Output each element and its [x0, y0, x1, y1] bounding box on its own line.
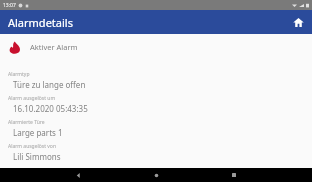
button[interactable]: Alarm ausgelöst von — [0, 141, 312, 165]
staticText: Large parts 1 — [13, 127, 63, 138]
staticText: Aktiver Alarm — [30, 42, 78, 52]
staticText: Alarm ausgelöst um — [8, 95, 56, 102]
button[interactable]: Aktiver Alarm — [0, 34, 312, 60]
staticText: Alarmtyp — [8, 71, 30, 78]
staticText: Türe zu lange offen — [13, 79, 86, 90]
button[interactable]: Home — [288, 12, 308, 32]
button[interactable]: Recent apps — [195, 168, 273, 182]
button[interactable]: Alarm ausgelöst um — [0, 93, 312, 117]
staticText: Alarmierte Türe — [8, 119, 45, 126]
staticText: Alarmdetails — [8, 15, 73, 30]
button[interactable]: Back — [39, 168, 117, 182]
button[interactable]: Alarmtyp — [0, 69, 312, 93]
button[interactable]: Home — [117, 168, 195, 182]
staticText: Lili Simmons — [13, 151, 61, 162]
staticText: 16.10.2020 05:43:35 — [13, 103, 88, 114]
button[interactable]: Alarmierte Türe — [0, 117, 312, 141]
staticText: 13:07 — [3, 2, 16, 9]
staticText: Alarm ausgelöst von — [8, 143, 56, 150]
